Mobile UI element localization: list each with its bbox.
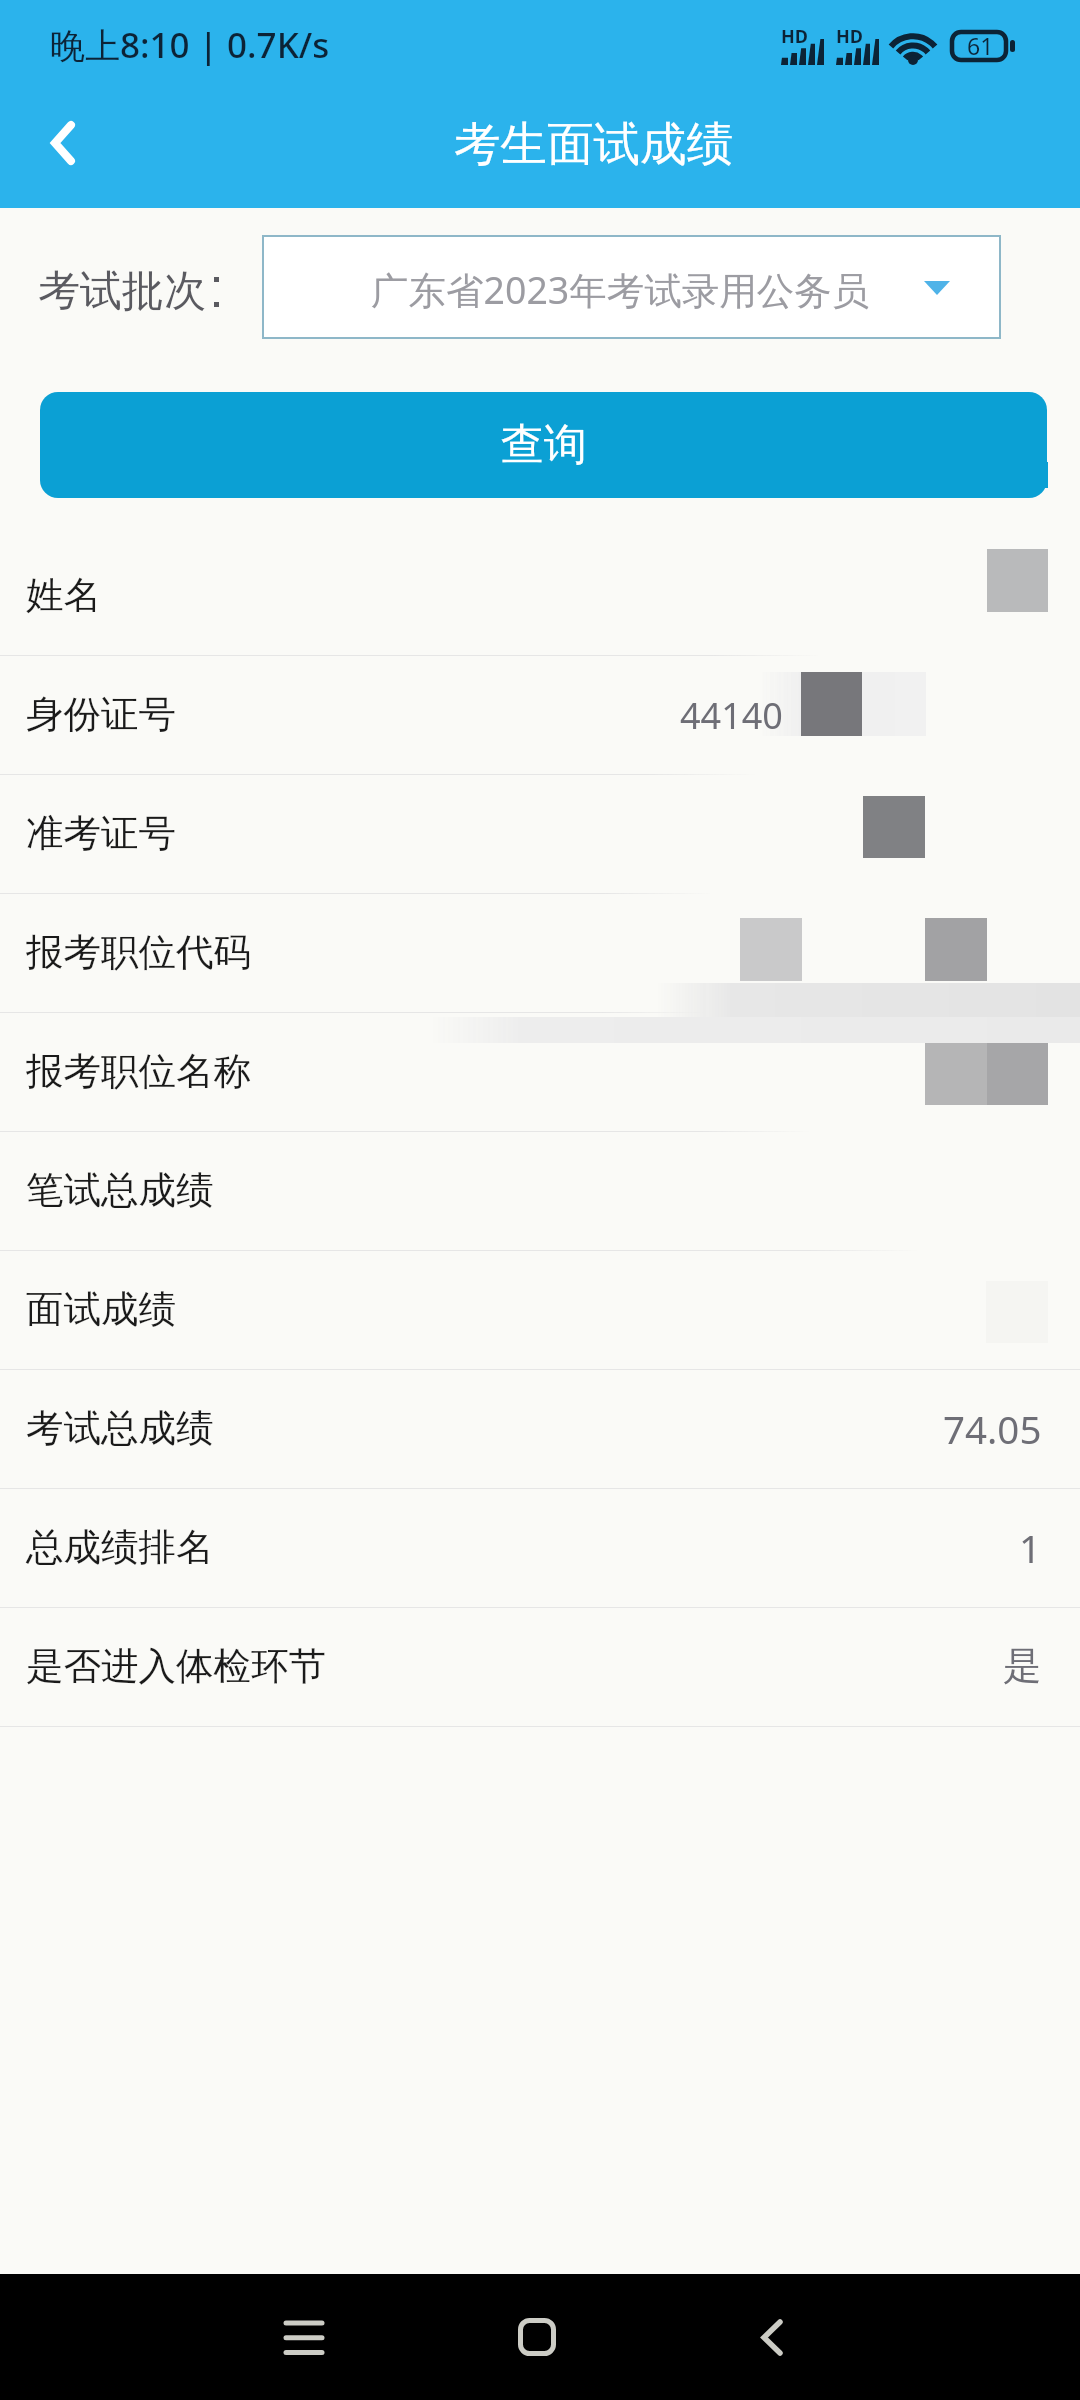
button[interactable]: Recent apps bbox=[243, 2274, 363, 2400]
button[interactable]: 报考职位名称 bbox=[0, 1013, 1080, 1132]
staticText: 报考职位代码 bbox=[26, 929, 251, 976]
button[interactable]: 姓名 bbox=[0, 537, 1080, 656]
button[interactable]: 考试总成绩 bbox=[0, 1370, 1080, 1489]
button[interactable]: 身份证号 bbox=[0, 656, 1080, 775]
button[interactable]: 查询 bbox=[40, 392, 1047, 498]
button[interactable]: 笔试总成绩 bbox=[0, 1132, 1080, 1251]
staticText: 准考证号 bbox=[26, 810, 176, 857]
button[interactable]: 报考职位代码 bbox=[0, 894, 1080, 1013]
staticText: 61 bbox=[967, 30, 994, 60]
staticText: 广东省2023年考试录用公务员 bbox=[371, 264, 870, 315]
button[interactable]: 面试成绩 bbox=[0, 1251, 1080, 1370]
staticText: 是否进入体检环节 bbox=[26, 1643, 326, 1690]
staticText: 面试成绩 bbox=[26, 1286, 176, 1333]
staticText: 考试批次 bbox=[38, 265, 206, 318]
button[interactable]: 准考证号 bbox=[0, 775, 1080, 894]
button[interactable]: Back bbox=[711, 2274, 831, 2400]
staticText: 总成绩排名 bbox=[26, 1524, 214, 1571]
staticText: 晚上8:10 | 0.7K/s bbox=[50, 21, 330, 69]
button[interactable]: 是否进入体检环节 bbox=[0, 1608, 1080, 1727]
staticText: HD bbox=[781, 24, 808, 49]
staticText: 74.05 bbox=[943, 1403, 1042, 1455]
button[interactable]: 广东省2023年考试录用公务员 bbox=[262, 235, 1001, 339]
staticText: 报考职位名称 bbox=[26, 1048, 251, 1095]
staticText: 考生面试成绩 bbox=[454, 115, 733, 174]
staticText: 姓名 bbox=[26, 572, 101, 619]
button[interactable]: 总成绩排名 bbox=[0, 1489, 1080, 1608]
staticText: 身份证号 bbox=[26, 691, 176, 738]
staticText: 44140 bbox=[680, 691, 783, 740]
staticText: 笔试总成绩 bbox=[26, 1167, 214, 1214]
staticText: 1 bbox=[1019, 1522, 1042, 1574]
staticText: 考试总成绩 bbox=[26, 1405, 214, 1452]
staticText: HD bbox=[836, 24, 863, 49]
button[interactable]: Back bbox=[0, 92, 110, 208]
button[interactable]: Home bbox=[477, 2274, 597, 2400]
staticText: 是 bbox=[1003, 1642, 1042, 1691]
staticText: 查询 bbox=[501, 418, 587, 472]
